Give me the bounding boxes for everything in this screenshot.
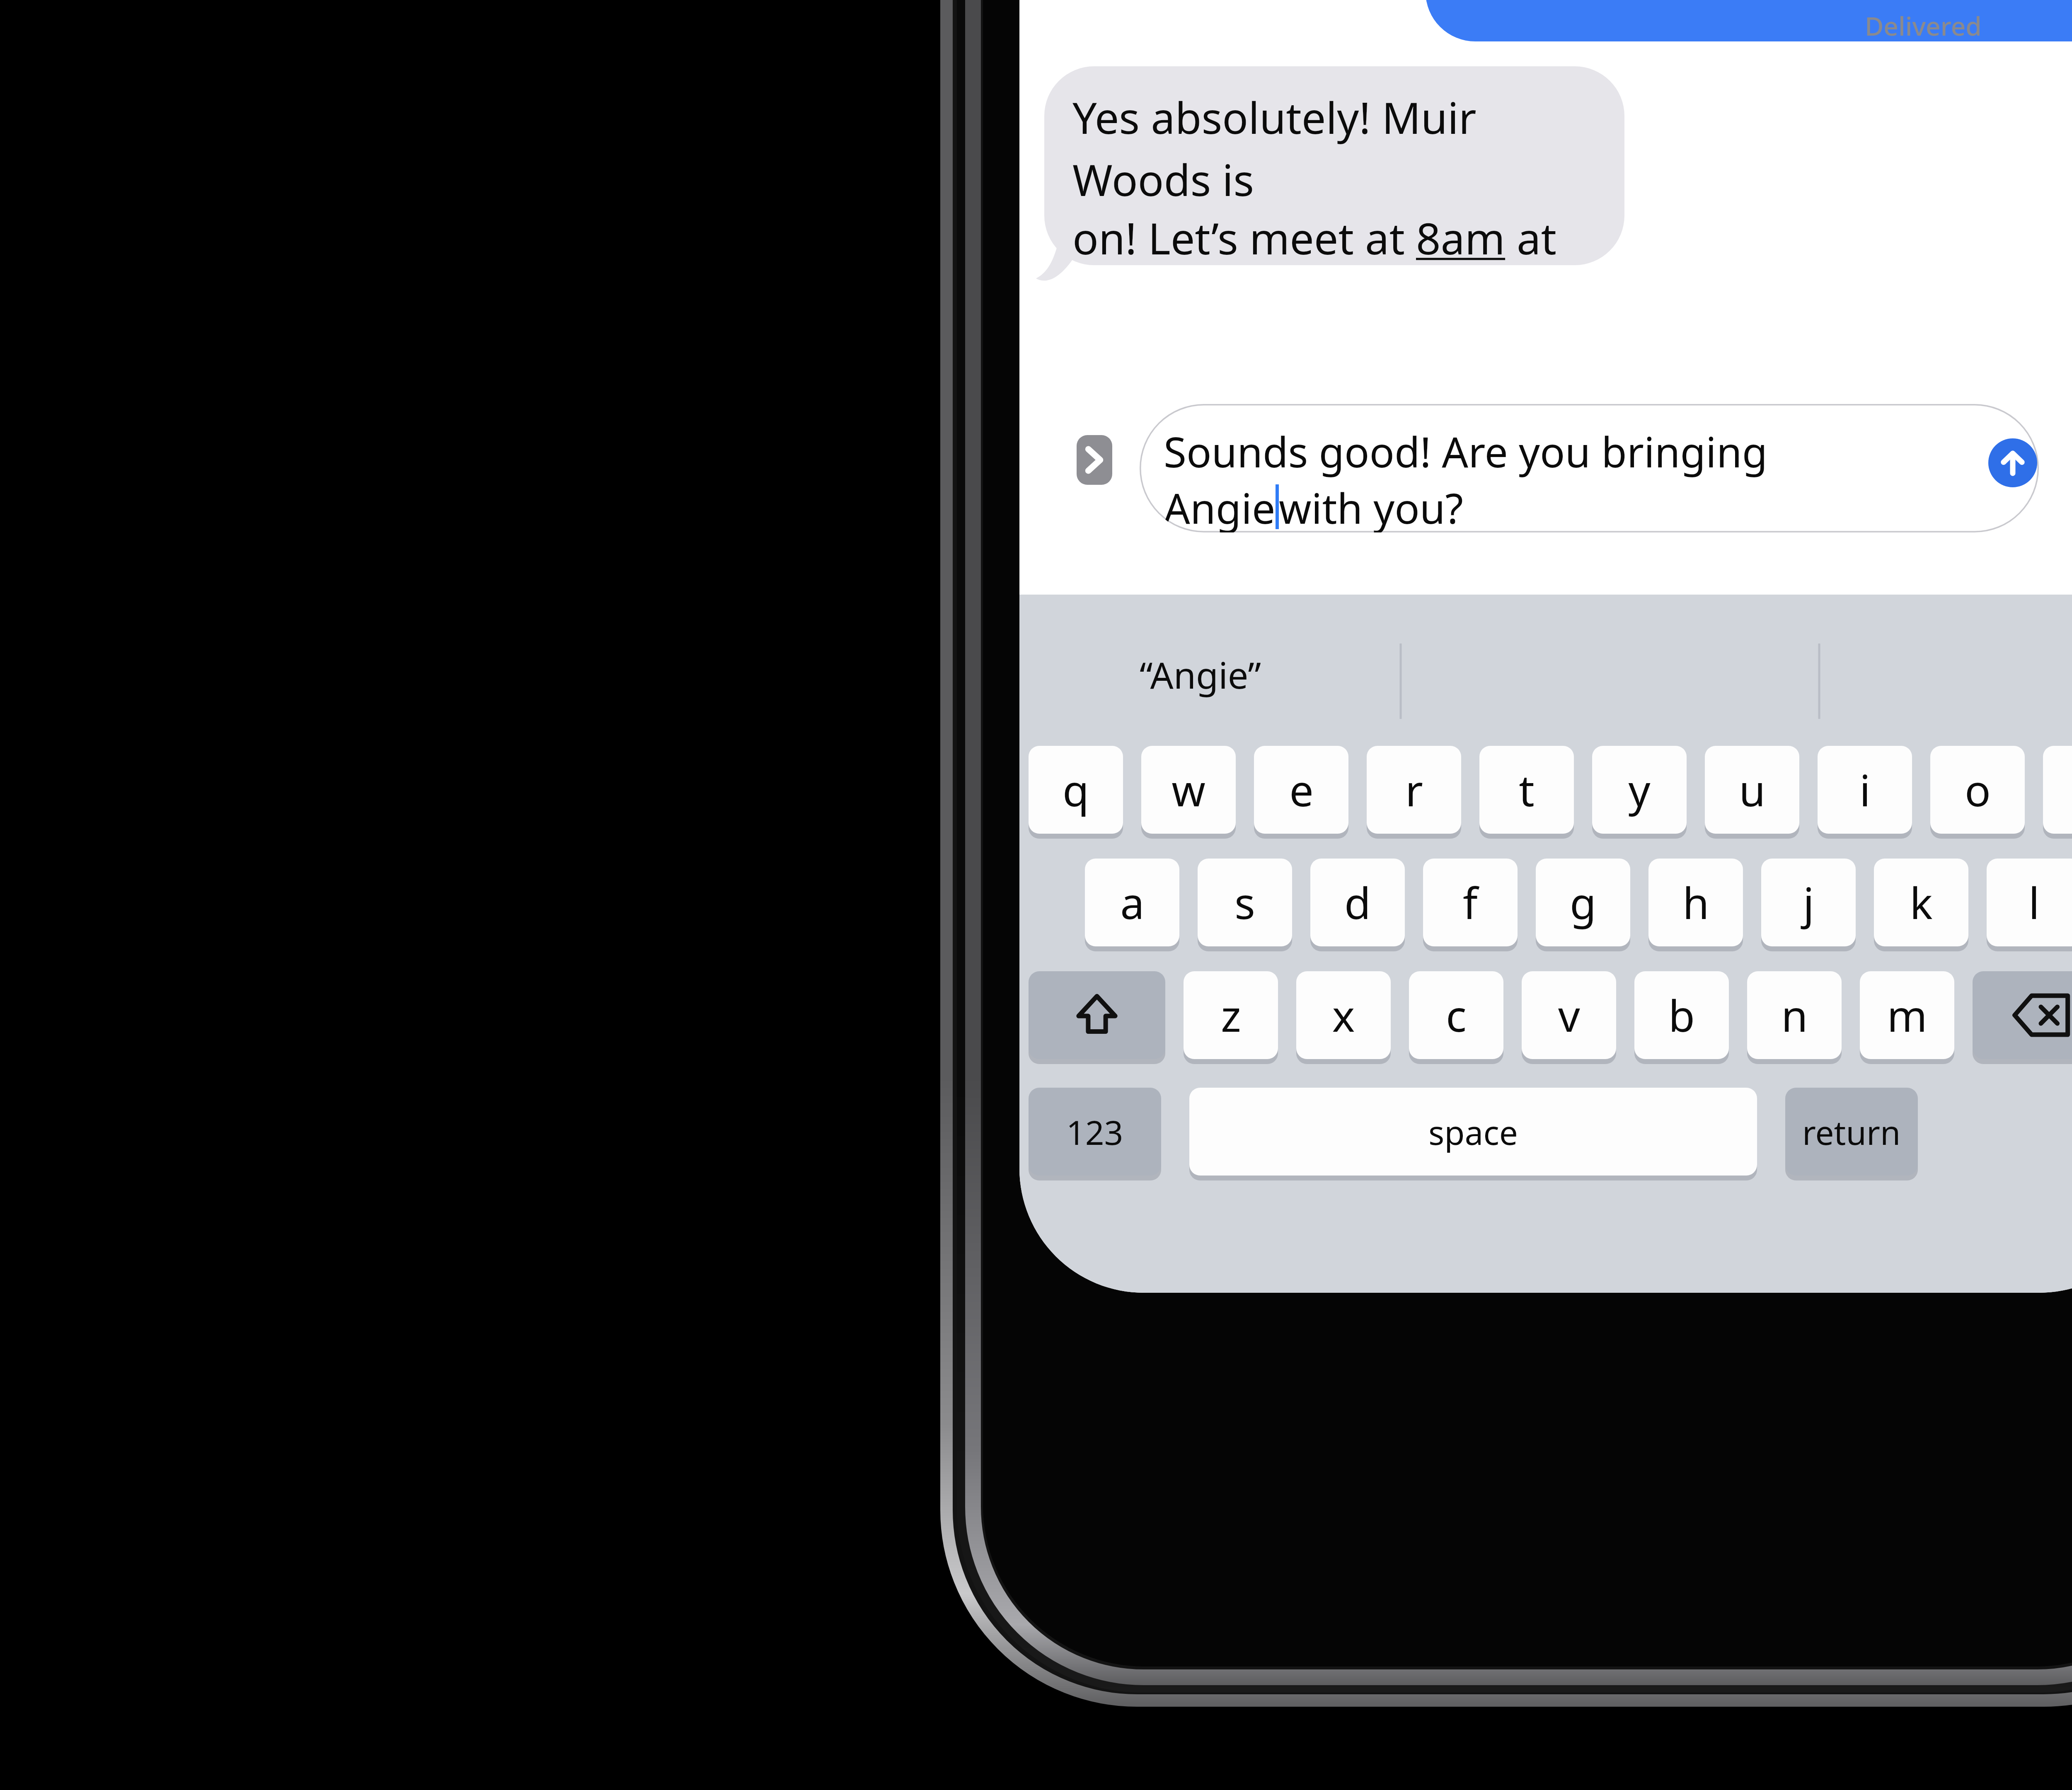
staticText: n	[1781, 986, 1808, 1045]
staticText: on! Let’s meet at	[1072, 208, 1416, 265]
button[interactable]: p	[2043, 746, 2072, 834]
staticText: Yes absolutely! Muir Woods is	[1072, 88, 1624, 208]
button[interactable]: c	[1409, 971, 1503, 1059]
button[interactable]: Show more apps	[1077, 435, 1112, 485]
staticText: j	[1803, 873, 1814, 932]
button[interactable]: Send	[1988, 438, 2037, 487]
staticText: g	[1570, 873, 1596, 932]
staticText: u	[1739, 760, 1766, 819]
button[interactable]: h	[1648, 859, 1743, 946]
button[interactable]: v	[1522, 971, 1616, 1059]
button[interactable]: s	[1198, 859, 1292, 946]
button[interactable]: l	[1987, 859, 2072, 946]
staticText: Sounds good! Are you bringing	[1164, 423, 1768, 479]
staticText: m	[1887, 986, 1927, 1045]
staticText: “Angie”	[1140, 650, 1261, 699]
staticText: i	[1859, 760, 1871, 819]
staticText: v	[1558, 986, 1580, 1045]
staticText: q	[1063, 760, 1089, 819]
staticText: c	[1446, 986, 1467, 1045]
button[interactable]: x	[1296, 971, 1391, 1059]
button[interactable]: o	[1930, 746, 2025, 834]
staticText: d	[1344, 873, 1371, 932]
staticText: 123	[1066, 1109, 1123, 1154]
staticText: x	[1332, 986, 1355, 1045]
staticText: k	[1910, 873, 1933, 932]
button[interactable]: z	[1184, 971, 1278, 1059]
staticText: b	[1668, 986, 1695, 1045]
staticText: at my	[1506, 208, 1624, 265]
button[interactable]: k	[1874, 859, 1968, 946]
staticText: s	[1234, 873, 1255, 932]
staticText: f	[1463, 873, 1478, 932]
button[interactable]: Shift	[1029, 971, 1165, 1059]
button[interactable]: q	[1029, 746, 1123, 834]
staticText: l	[2028, 873, 2040, 932]
staticText: y	[1628, 760, 1651, 819]
button[interactable]: a	[1085, 859, 1179, 946]
button[interactable]: “Angie”	[1019, 595, 2072, 740]
staticText: e	[1289, 760, 1314, 819]
button[interactable]: r	[1367, 746, 1461, 834]
staticText: space	[1428, 1109, 1518, 1154]
staticText: Delivered	[1865, 8, 1982, 43]
button[interactable]: y	[1592, 746, 1687, 834]
staticText: w	[1172, 760, 1205, 819]
button[interactable]: Sounds good! Are you bringing	[1140, 404, 2039, 532]
button[interactable]: i	[1818, 746, 1912, 834]
button[interactable]: d	[1310, 859, 1405, 946]
staticText: with you?	[1279, 479, 1463, 532]
button[interactable]: Backspace	[1973, 971, 2072, 1059]
button[interactable]: e	[1254, 746, 1348, 834]
button[interactable]: return	[1785, 1088, 1918, 1176]
button[interactable]: space	[1189, 1088, 1757, 1176]
button[interactable]: j	[1761, 859, 1856, 946]
button[interactable]: u	[1705, 746, 1799, 834]
button[interactable]: f	[1423, 859, 1518, 946]
staticText: h	[1682, 873, 1709, 932]
staticText: 8am	[1416, 208, 1506, 265]
staticText: z	[1221, 986, 1241, 1045]
staticText: a	[1120, 873, 1145, 932]
button[interactable]: b	[1634, 971, 1729, 1059]
staticText: r	[1405, 760, 1423, 819]
button[interactable]: 123	[1029, 1088, 1161, 1176]
button[interactable]: g	[1536, 859, 1630, 946]
button[interactable]: w	[1141, 746, 1236, 834]
button[interactable]: m	[1860, 971, 1954, 1059]
staticText: Angie	[1164, 479, 1276, 532]
button[interactable]: t	[1479, 746, 1574, 834]
staticText: t	[1519, 760, 1535, 819]
staticText: return	[1802, 1109, 1901, 1154]
staticText: o	[1965, 760, 1991, 819]
button[interactable]: n	[1747, 971, 1842, 1059]
